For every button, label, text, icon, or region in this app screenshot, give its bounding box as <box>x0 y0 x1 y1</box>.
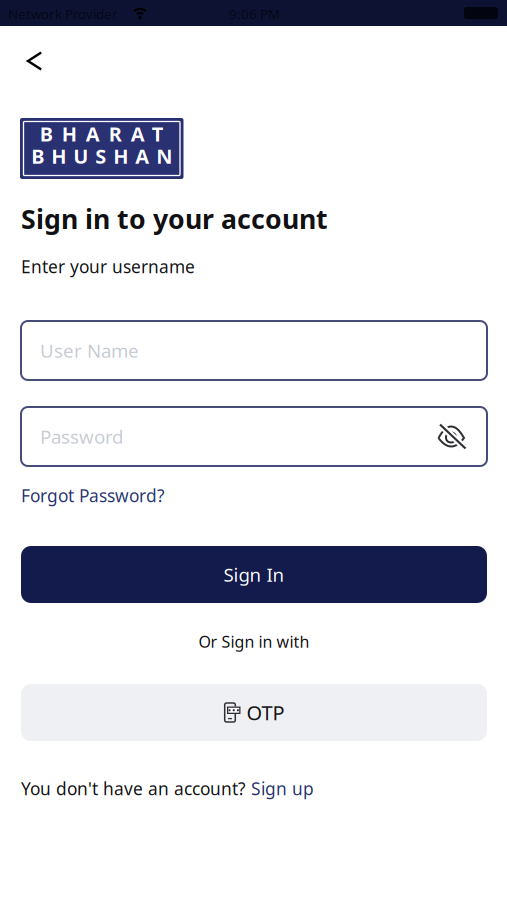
staticText: Password <box>40 424 123 449</box>
button[interactable] <box>437 423 468 450</box>
button[interactable]: Sign up <box>251 777 314 800</box>
button[interactable]: Forgot Password? <box>21 484 165 507</box>
staticText: Or Sign in with <box>198 631 309 652</box>
staticText: OTP <box>246 699 284 726</box>
staticText: Sign in to your account <box>21 201 328 236</box>
button[interactable] <box>26 51 43 71</box>
staticText: You don't have an account? <box>21 777 246 800</box>
staticText: Forgot Password? <box>21 484 165 507</box>
staticText: Sign In <box>223 562 284 587</box>
staticText: BHUSHAN <box>31 143 172 169</box>
staticText: Sign up <box>251 777 314 800</box>
button[interactable]: OTP <box>21 684 487 741</box>
staticText: Network Provider <box>8 5 118 23</box>
button[interactable]: Sign In <box>21 546 487 603</box>
staticText: Enter your username <box>21 255 195 278</box>
staticText: User Name <box>40 338 139 363</box>
staticText: 9:06 PM <box>229 5 280 23</box>
staticText: BHARAT <box>40 120 164 147</box>
